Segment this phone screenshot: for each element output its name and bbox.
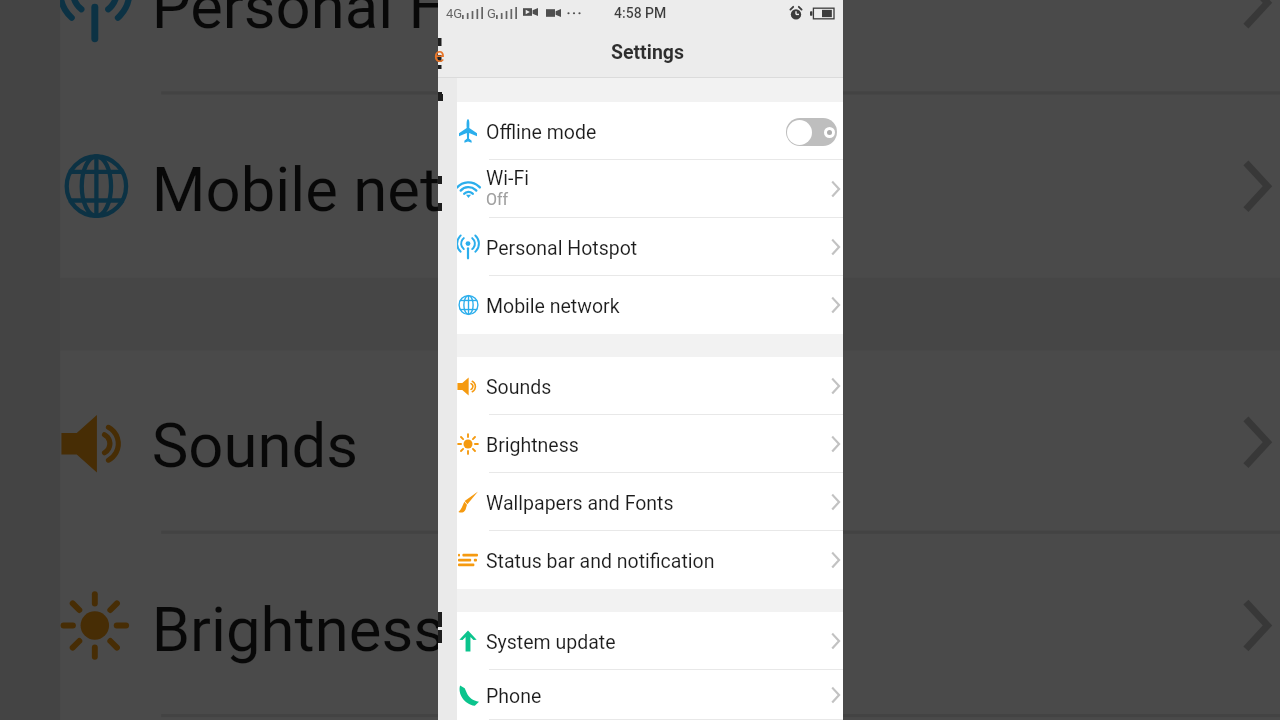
button[interactable]: Phone — [438, 670, 843, 720]
staticText: Phone — [486, 685, 542, 708]
staticText: System update — [486, 631, 616, 654]
staticText: Sounds — [152, 411, 360, 483]
button[interactable]: Mobile network — [438, 276, 843, 334]
button[interactable]: Wi-Fi — [438, 160, 843, 218]
button[interactable]: System update — [438, 612, 843, 670]
staticText: Sounds — [486, 376, 552, 399]
button[interactable]: Wallpapers and Fonts — [0, 717, 1280, 720]
staticText: Brightness — [486, 434, 579, 457]
staticText: Brightness — [152, 594, 446, 667]
button[interactable]: Personal Hotspot — [438, 218, 843, 276]
staticText: 4G — [446, 6, 463, 21]
staticText: Personal Hotspot — [152, 0, 632, 44]
button[interactable]: Brightness — [0, 534, 1280, 717]
button[interactable]: Mobile network — [0, 94, 1280, 278]
staticText: Personal Hotspot — [486, 237, 638, 260]
staticText: e — [434, 43, 445, 66]
staticText: Settings — [611, 41, 684, 64]
staticText: Wallpapers and Fonts — [486, 492, 674, 515]
staticText: Off — [486, 190, 509, 209]
button[interactable]: Offline mode toggle — [786, 118, 837, 146]
staticText: G — [487, 6, 496, 21]
staticText: 4:58 PM — [614, 5, 667, 21]
button[interactable]: Wallpapers and Fonts — [438, 473, 843, 531]
staticText: Mobile network — [152, 155, 575, 227]
staticText: Wi-Fi — [486, 167, 529, 190]
staticText: Offline mode — [486, 121, 597, 144]
staticText: Mobile network — [486, 295, 620, 318]
button[interactable]: Brightness — [438, 415, 843, 473]
button[interactable]: Offline mode — [438, 102, 843, 160]
button[interactable]: Personal Hotspot — [0, 0, 1280, 94]
staticText: Status bar and notification — [486, 550, 715, 573]
button[interactable]: Sounds — [0, 350, 1280, 534]
button[interactable]: Status bar and notification — [438, 531, 843, 589]
button[interactable]: Sounds — [438, 357, 843, 415]
